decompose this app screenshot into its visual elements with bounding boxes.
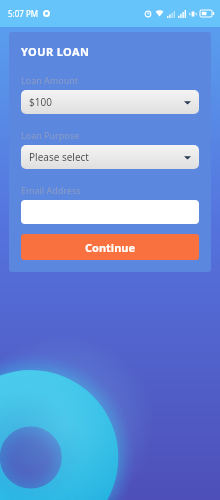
button[interactable]: Please select	[21, 145, 199, 169]
staticText: YOUR LOAN	[21, 44, 90, 59]
staticText: Email Address	[21, 184, 81, 196]
button[interactable]: $100	[21, 90, 199, 114]
staticText: Continue	[85, 240, 136, 255]
staticText: $100	[29, 95, 52, 109]
staticText: Loan Amount	[21, 74, 79, 86]
staticText: Please select	[29, 150, 89, 164]
button[interactable]	[21, 200, 199, 224]
staticText: 5:07 PM	[8, 8, 39, 19]
staticText: Loan Purpose	[21, 129, 80, 141]
button[interactable]: Continue	[21, 234, 199, 260]
